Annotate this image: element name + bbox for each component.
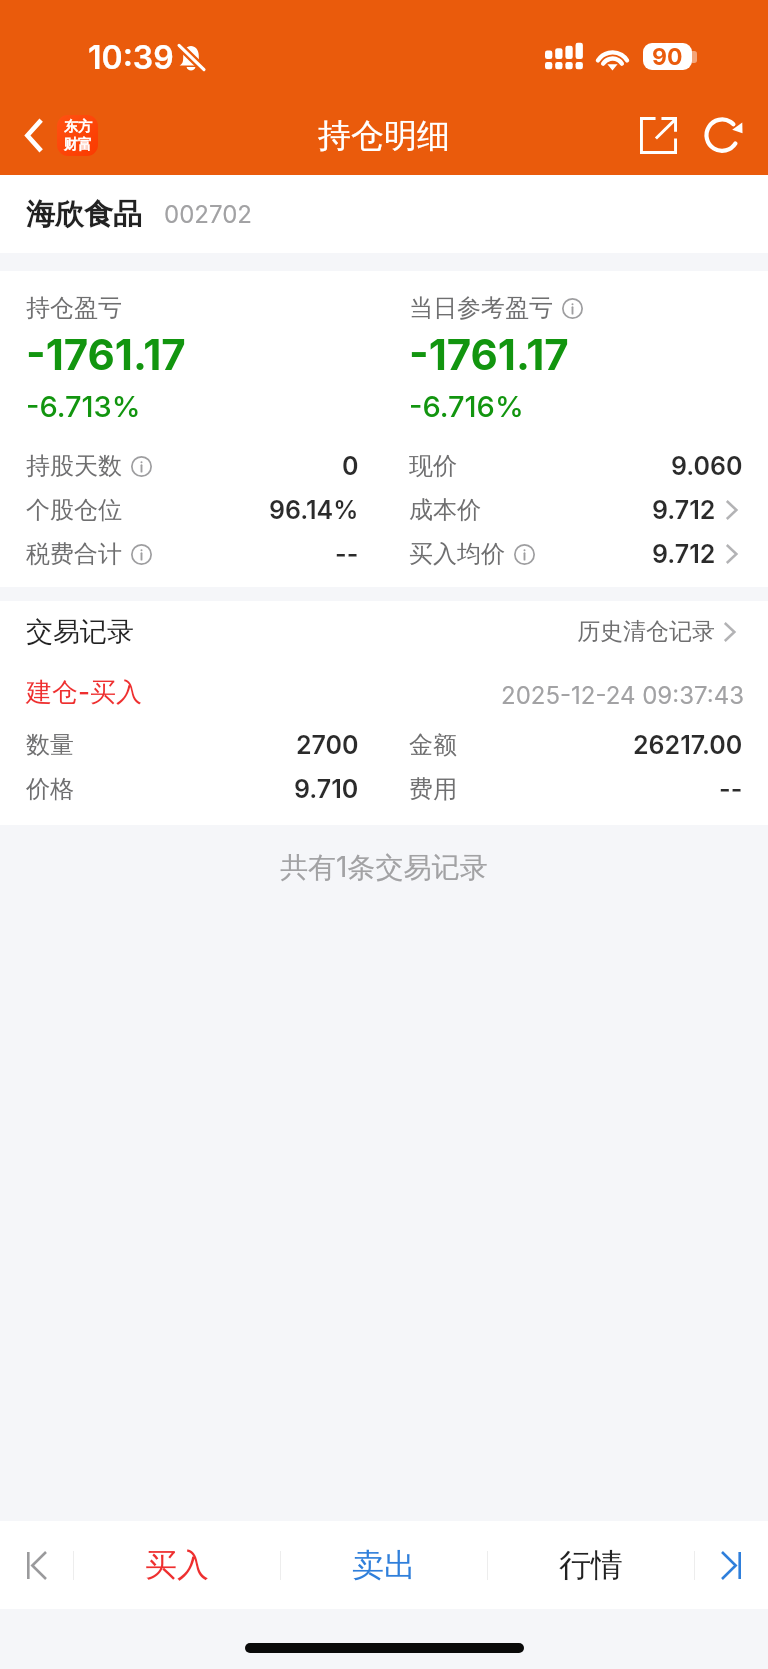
staticText: 金额 [409, 730, 457, 760]
staticText: -1761.17 [409, 329, 569, 380]
staticText: 历史清仓记录 [577, 617, 715, 646]
staticText: 26217.00 [633, 730, 743, 760]
staticText: 持股天数 [26, 451, 122, 481]
button[interactable]: 历史清仓记录 [577, 601, 741, 662]
staticText: 财富 [64, 136, 92, 154]
staticText: 共有1条交易记录 [280, 850, 488, 885]
staticText: 东方 [64, 118, 92, 136]
staticText: 当日参考盈亏 [409, 293, 553, 323]
staticText: 建仓-买入 [26, 676, 143, 709]
staticText: 税费合计 [26, 539, 122, 569]
staticText: 0 [342, 451, 359, 481]
staticText: 海欣食品 [26, 196, 142, 233]
button[interactable]: 成本价 [384, 488, 768, 532]
button[interactable]: Refresh [690, 96, 756, 175]
staticText: 数量 [26, 730, 74, 760]
staticText: 持仓明细 [318, 115, 450, 157]
staticText: 9.712 [652, 495, 716, 525]
button[interactable]: 买入均价 [384, 532, 768, 576]
button[interactable]: Back to East Money [0, 96, 108, 175]
button[interactable]: First page [0, 1521, 73, 1609]
staticText: 现价 [409, 451, 457, 481]
button[interactable]: 卖出 [281, 1521, 487, 1609]
staticText: 价格 [26, 774, 74, 804]
button[interactable]: 行情 [488, 1521, 694, 1609]
staticText: 卖出 [352, 1545, 416, 1585]
staticText: -6.713% [26, 389, 141, 424]
staticText: 96.14% [269, 495, 359, 525]
staticText: 2700 [296, 730, 359, 760]
staticText: 2025-12-24 09:37:43 [501, 681, 744, 710]
staticText: 9.710 [294, 774, 359, 804]
button[interactable]: Share [626, 96, 690, 175]
staticText: -- [335, 539, 359, 569]
button[interactable]: 买入 [74, 1521, 280, 1609]
staticText: 9.060 [671, 451, 743, 481]
staticText: 买入均价 [409, 539, 505, 569]
staticText: 持仓盈亏 [26, 293, 122, 323]
staticText: 行情 [559, 1545, 623, 1585]
staticText: 个股仓位 [26, 495, 122, 525]
staticText: 成本价 [409, 495, 481, 525]
staticText: -- [719, 774, 743, 804]
staticText: 90 [652, 43, 683, 70]
button[interactable]: 海欣食品 [0, 175, 768, 253]
staticText: -6.716% [409, 389, 524, 424]
staticText: 买入 [145, 1545, 209, 1585]
button[interactable]: Last page [695, 1521, 768, 1609]
staticText: -1761.17 [26, 329, 186, 380]
staticText: 交易记录 [26, 615, 134, 649]
staticText: 002702 [164, 200, 252, 229]
staticText: 费用 [409, 774, 457, 804]
staticText: 10:39 [88, 38, 174, 77]
staticText: 9.712 [652, 539, 716, 569]
